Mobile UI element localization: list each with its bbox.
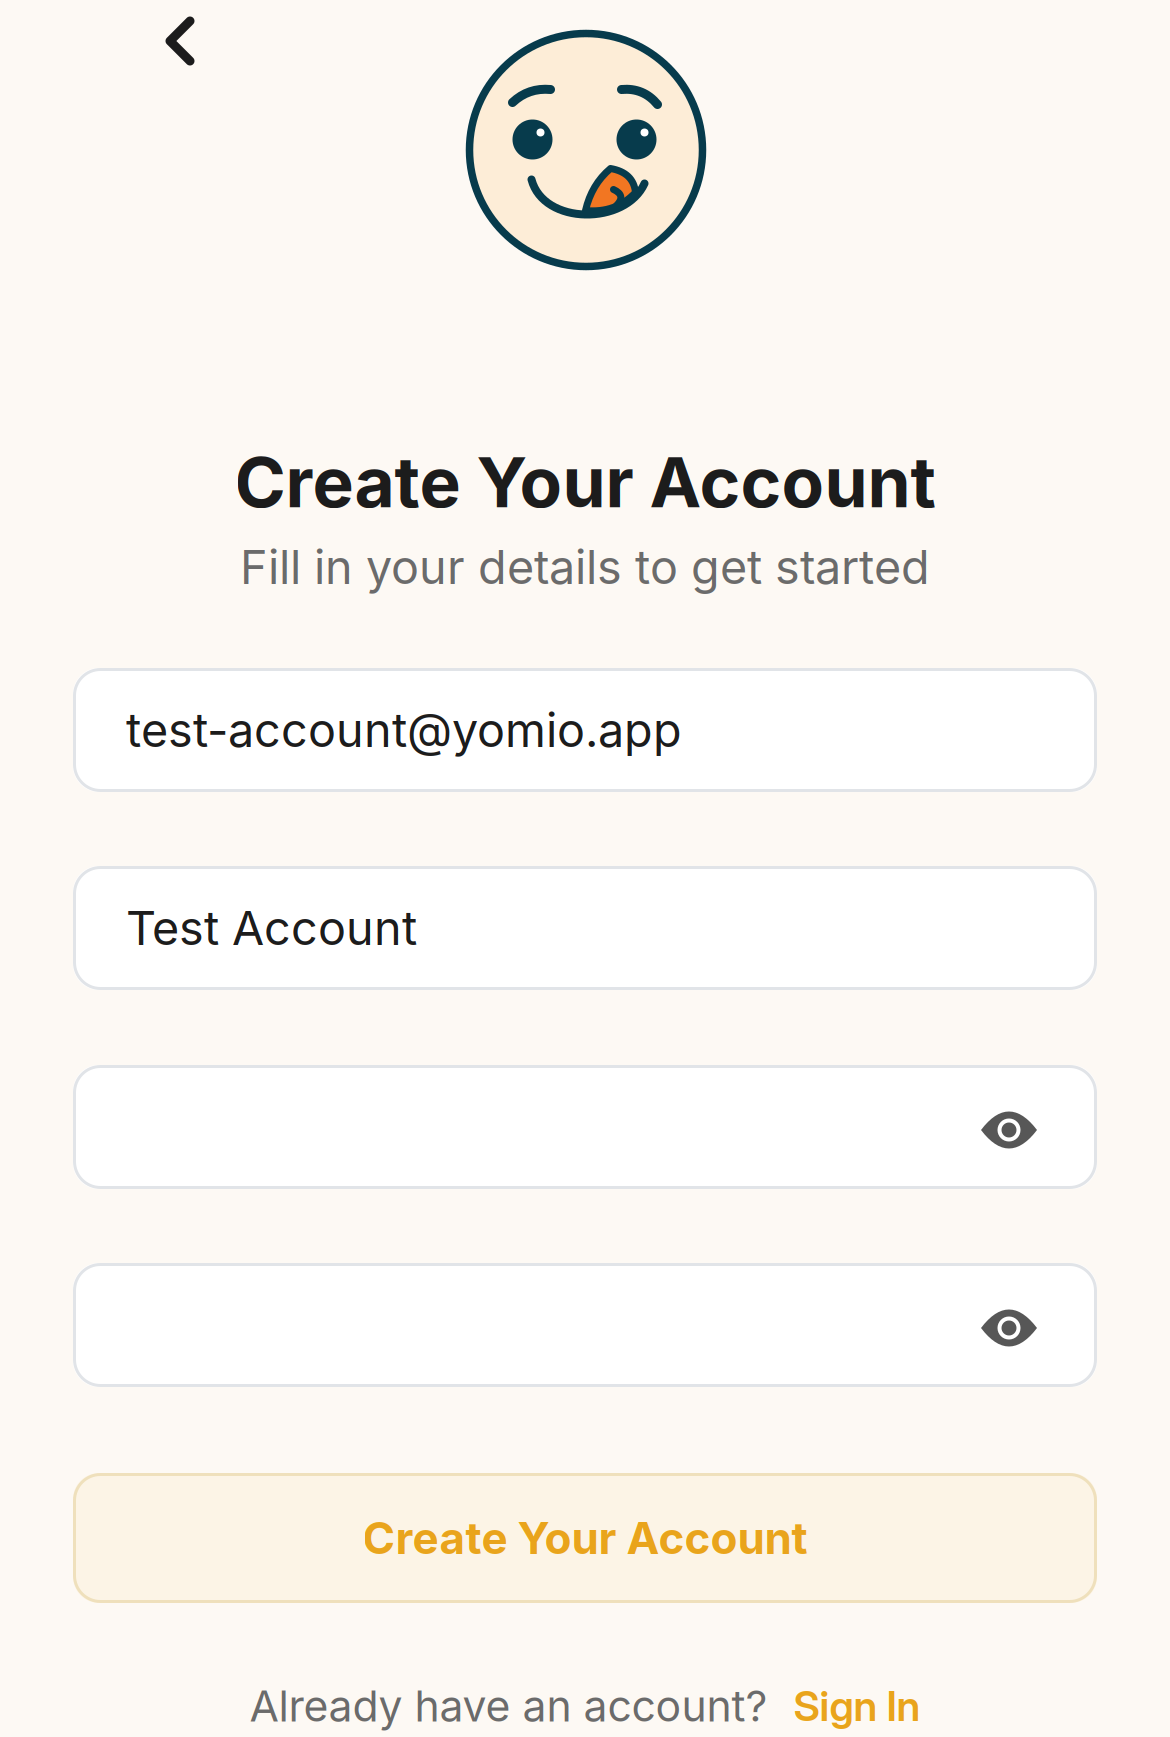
staticText: Already have an account? [249,1680,767,1732]
button[interactable]: Sign In [793,1681,920,1731]
staticText: Create Your Account [234,440,935,524]
button[interactable]: Show password [961,1274,1057,1376]
button[interactable]: Back [130,0,230,104]
staticText: Test Account [126,900,417,956]
button[interactable]: Create Your Account [73,1473,1097,1603]
staticText: Fill in your details to get started [240,539,930,595]
staticText: Sign In [793,1681,920,1731]
button[interactable]: Show password [961,1076,1057,1178]
staticText: test-account@yomio.app [126,702,682,758]
staticText: Create Your Account [362,1511,807,1565]
